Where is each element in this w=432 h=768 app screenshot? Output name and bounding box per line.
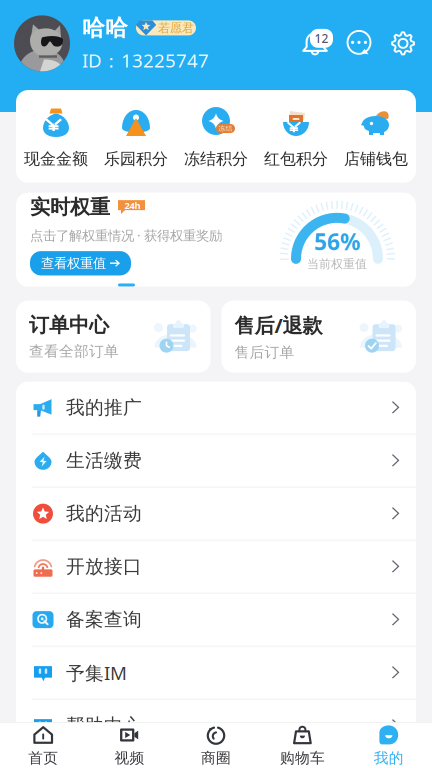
button[interactable]: 开放接口 — [16, 541, 416, 594]
staticText: 我的 — [374, 749, 404, 767]
button[interactable]: 现金金额 — [16, 104, 96, 169]
staticText: 12 — [314, 30, 328, 46]
button[interactable]: 备案查询 — [16, 594, 416, 647]
staticText: 冻结 — [218, 124, 232, 133]
button[interactable]: 我的推广 — [16, 382, 416, 435]
staticText: 生活缴费 — [66, 449, 142, 472]
staticText: 查看全部订单 — [29, 342, 119, 360]
button[interactable]: 通知 — [302, 29, 328, 57]
button[interactable]: 消息 — [346, 30, 372, 56]
staticText: 备案查询 — [66, 608, 142, 631]
staticText: 售后/退款 — [234, 312, 322, 338]
staticText: 予集IM — [66, 660, 127, 685]
staticText: 点击了解权重情况 · 获得权重奖励 — [30, 226, 222, 244]
staticText: 店铺钱包 — [344, 149, 408, 169]
staticText: 24h — [124, 199, 140, 211]
staticText: 当前权重值 — [307, 256, 367, 271]
button[interactable]: 首页 — [0, 723, 86, 768]
button[interactable]: 红包积分 — [256, 104, 336, 169]
button[interactable]: 订单中心 — [16, 301, 210, 373]
staticText: 哈哈 — [82, 14, 128, 42]
staticText: 我的活动 — [66, 502, 142, 525]
button[interactable]: 视频 — [86, 723, 173, 768]
button[interactable]: 查看权重值 — [30, 251, 131, 275]
button[interactable]: 我的活动 — [16, 488, 416, 541]
staticText: 售后订单 — [234, 343, 294, 361]
staticText: 乐园积分 — [104, 149, 168, 169]
button[interactable]: 店铺钱包 — [336, 104, 416, 169]
staticText: 若愿君 — [158, 21, 194, 35]
staticText: ID：13225747 — [82, 48, 209, 73]
staticText: 查看权重值 — [41, 255, 106, 271]
button[interactable]: 商圈 — [173, 723, 259, 768]
staticText: 首页 — [28, 749, 58, 767]
button[interactable]: 帮助中心 — [16, 700, 416, 752]
button[interactable]: 予集IM — [16, 647, 416, 700]
staticText: 56% — [314, 226, 360, 256]
staticText: 视频 — [115, 749, 145, 767]
staticText: 实时权重 — [30, 195, 110, 219]
staticText: 我的推广 — [66, 396, 142, 419]
staticText: 开放接口 — [66, 555, 142, 578]
staticText: 订单中心 — [29, 313, 109, 337]
button[interactable]: 设置 — [390, 30, 416, 56]
staticText: 现金金额 — [24, 149, 88, 169]
staticText: 帮助中心 — [66, 714, 142, 737]
staticText: 购物车 — [280, 749, 325, 767]
button[interactable]: 生活缴费 — [16, 435, 416, 488]
button[interactable]: 我的 — [346, 723, 432, 768]
button[interactable]: 购物车 — [259, 723, 346, 768]
button[interactable]: 冻结 — [176, 104, 256, 169]
staticText: 冻结积分 — [184, 149, 248, 169]
staticText: 红包积分 — [264, 149, 328, 169]
button[interactable]: 售后/退款 — [221, 301, 416, 373]
button[interactable]: 乐园积分 — [96, 104, 176, 169]
staticText: 商圈 — [201, 749, 231, 767]
